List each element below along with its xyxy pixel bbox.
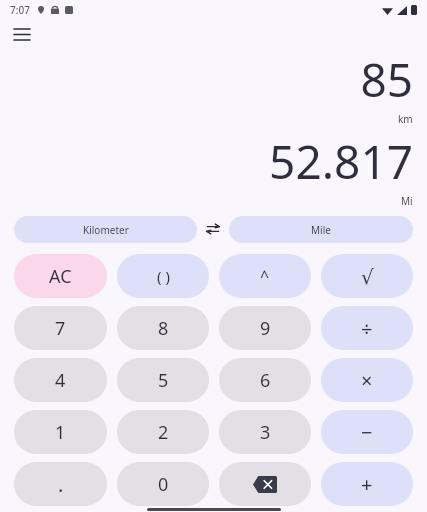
staticText: 6 bbox=[260, 368, 271, 393]
button[interactable]: 5 bbox=[117, 358, 209, 402]
staticText: 0 bbox=[158, 472, 169, 497]
button[interactable]: Kilometer bbox=[14, 216, 197, 243]
button[interactable]: √ bbox=[321, 254, 413, 298]
staticText: AC bbox=[49, 264, 72, 289]
staticText: ÷ bbox=[361, 315, 373, 342]
staticText: Mile bbox=[311, 223, 331, 237]
staticText: 85 bbox=[360, 48, 413, 111]
staticText: ( ) bbox=[157, 266, 170, 286]
staticText: 2 bbox=[158, 420, 169, 445]
staticText: 9 bbox=[260, 316, 271, 341]
button[interactable]: − bbox=[321, 410, 413, 454]
staticText: 8 bbox=[158, 316, 169, 341]
button[interactable]: 6 bbox=[219, 358, 311, 402]
button[interactable]: 7 bbox=[14, 306, 107, 350]
button[interactable]: Mile bbox=[229, 216, 413, 243]
staticText: 7 bbox=[55, 316, 66, 341]
button[interactable]: 1 bbox=[14, 410, 107, 454]
button[interactable]: Menu bbox=[4, 20, 40, 48]
staticText: × bbox=[361, 367, 373, 394]
button[interactable]: . bbox=[14, 462, 107, 506]
button[interactable]: 0 bbox=[117, 462, 209, 506]
staticText: ^ bbox=[260, 265, 270, 287]
button[interactable]: AC bbox=[14, 254, 107, 298]
button[interactable]: Backspace bbox=[219, 462, 311, 506]
staticText: 7:07 bbox=[10, 3, 30, 17]
button[interactable]: ^ bbox=[219, 254, 311, 298]
button[interactable]: ÷ bbox=[321, 306, 413, 350]
button[interactable]: Swap units bbox=[197, 214, 229, 244]
staticText: 52.817 bbox=[269, 130, 413, 193]
staticText: + bbox=[361, 471, 373, 498]
button[interactable]: 2 bbox=[117, 410, 209, 454]
staticText: − bbox=[361, 419, 373, 446]
button[interactable]: 9 bbox=[219, 306, 311, 350]
button[interactable]: 4 bbox=[14, 358, 107, 402]
staticText: . bbox=[58, 471, 64, 498]
staticText: √ bbox=[361, 265, 374, 288]
staticText: 4 bbox=[55, 368, 66, 393]
button[interactable]: × bbox=[321, 358, 413, 402]
staticText: km bbox=[398, 112, 413, 126]
staticText: Kilometer bbox=[83, 223, 129, 237]
staticText: Mi bbox=[401, 194, 413, 208]
button[interactable]: 3 bbox=[219, 410, 311, 454]
staticText: 5 bbox=[158, 368, 169, 393]
button[interactable]: 8 bbox=[117, 306, 209, 350]
staticText: 1 bbox=[55, 420, 66, 445]
button[interactable]: + bbox=[321, 462, 413, 506]
staticText: 3 bbox=[260, 420, 271, 445]
button[interactable]: ( ) bbox=[117, 254, 209, 298]
